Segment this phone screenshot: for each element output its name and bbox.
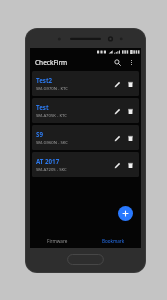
button[interactable]: S9 (32, 125, 139, 150)
button[interactable]: Search (112, 57, 123, 68)
button[interactable]: Test2 (32, 71, 139, 96)
staticText: S9 (36, 130, 43, 138)
staticText: SM-A720S - SKC (36, 167, 67, 173)
staticText: CheckFirm (35, 58, 68, 67)
staticText: Bookmark (102, 238, 125, 244)
button[interactable]: Edit (111, 78, 123, 90)
staticText: Test (36, 103, 49, 111)
staticText: SM-G970N - KTC (36, 86, 68, 92)
staticText: Firmware (47, 238, 68, 244)
button[interactable]: Bookmark (85, 234, 141, 248)
staticText: Test2 (36, 76, 53, 84)
button[interactable]: Delete (124, 78, 136, 90)
button[interactable]: Delete (124, 105, 136, 117)
staticText: SM-G960N - SKC (36, 140, 68, 146)
button[interactable]: More options (126, 57, 137, 68)
button[interactable]: Add firmware (118, 206, 133, 221)
button[interactable]: Edit (111, 159, 123, 171)
button[interactable]: Test (32, 98, 139, 123)
button[interactable]: Edit (111, 132, 123, 144)
button[interactable]: Delete (124, 132, 136, 144)
staticText: AT 2017 (36, 157, 60, 165)
button[interactable]: Edit (111, 105, 123, 117)
button[interactable]: Delete (124, 159, 136, 171)
button[interactable]: AT 2017 (32, 152, 139, 177)
staticText: SM-A705K - KTC (36, 113, 67, 119)
button[interactable]: Firmware (30, 234, 85, 248)
